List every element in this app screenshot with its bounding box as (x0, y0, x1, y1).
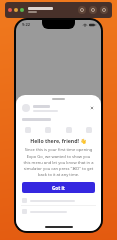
button[interactable]: Maximize window (20, 8, 24, 12)
staticText: Got it (52, 185, 65, 191)
button[interactable]: Close window (8, 8, 12, 12)
staticText: 9:22 (22, 22, 30, 27)
staticText: Hello there, friend! 👋 (16, 137, 101, 144)
button[interactable]: Settings (89, 6, 97, 14)
button[interactable]: Home (78, 6, 86, 14)
staticText: Since this is your first time opening Ex… (23, 147, 94, 177)
button[interactable]: Reload (100, 6, 108, 14)
button[interactable]: Close (89, 105, 95, 111)
button[interactable]: Got it (22, 182, 95, 193)
button[interactable]: Minimize window (14, 8, 18, 12)
